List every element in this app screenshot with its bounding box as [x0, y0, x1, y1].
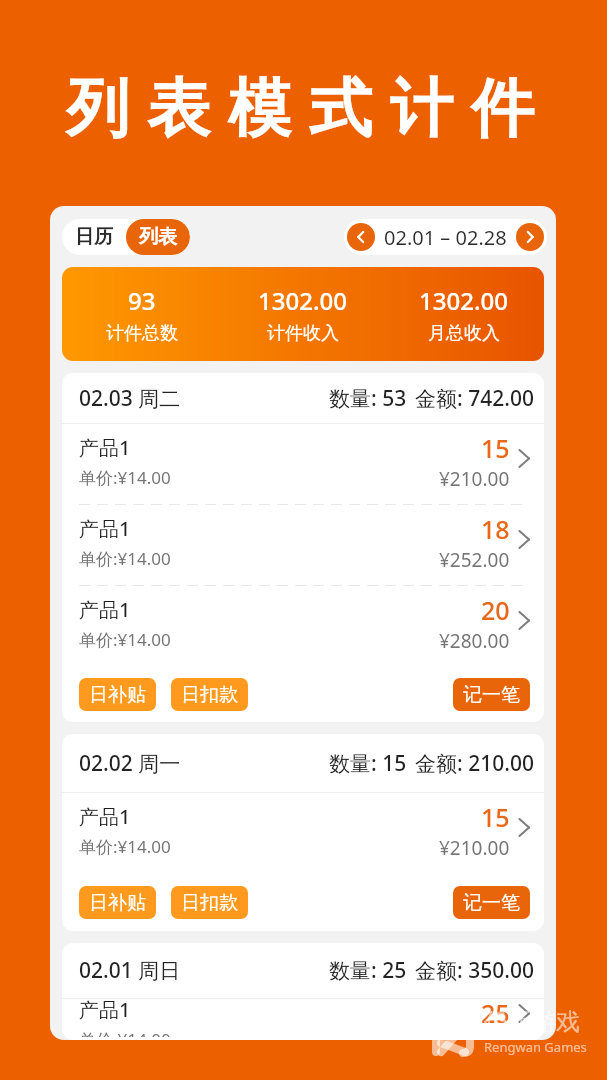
staticText: ¥280.00 — [439, 628, 510, 654]
staticText: ¥210.00 — [439, 835, 510, 861]
staticText: 单价:¥14.00 — [79, 1028, 171, 1037]
staticText: 数量: 15 — [329, 749, 407, 778]
staticText: 单价:¥14.00 — [79, 547, 171, 570]
staticText: Rengwan Games — [484, 1038, 587, 1056]
button[interactable]: 日补贴 — [79, 678, 156, 711]
staticText: 金额: 210.00 — [415, 749, 534, 778]
staticText: 数量: 25 — [329, 956, 407, 985]
staticText: 25 — [481, 996, 510, 1030]
staticText: 记一笔 — [463, 683, 520, 707]
button[interactable]: 产品1 — [62, 793, 544, 873]
staticText: 02.01 周日 — [79, 956, 181, 985]
staticText: 产品1 — [79, 996, 131, 1023]
staticText: 仍玩游戏 — [484, 1007, 580, 1037]
staticText: 产品1 — [79, 803, 131, 830]
staticText: 计件收入 — [267, 322, 339, 345]
staticText: 18 — [481, 512, 510, 546]
button[interactable]: Previous period — [347, 223, 375, 251]
button[interactable]: 日扣款 — [171, 678, 248, 711]
staticText: 02.02 周一 — [79, 749, 181, 778]
button[interactable]: 产品1 — [62, 424, 544, 504]
button[interactable]: 产品1 — [62, 586, 544, 666]
button[interactable]: 日补贴 — [79, 886, 156, 919]
button[interactable]: 日历 — [62, 219, 126, 255]
staticText: 列表 — [139, 225, 177, 249]
staticText: 产品1 — [79, 434, 131, 461]
staticText: 15 — [481, 800, 510, 834]
staticText: 20 — [481, 593, 510, 627]
staticText: 15 — [481, 431, 510, 465]
button[interactable]: 记一笔 — [453, 678, 530, 711]
staticText: 数量: 53 — [329, 384, 407, 413]
staticText: 02.01 – 02.28 — [384, 224, 507, 251]
staticText: 日扣款 — [181, 891, 238, 915]
staticText: 日历 — [75, 225, 113, 249]
staticText: 日扣款 — [181, 683, 238, 707]
staticText: 单价:¥14.00 — [79, 835, 171, 858]
staticText: 1302.00 — [419, 284, 508, 317]
staticText: 1302.00 — [258, 284, 347, 317]
staticText: 产品1 — [79, 515, 131, 542]
staticText: 金额: 350.00 — [415, 956, 534, 985]
button[interactable]: 日扣款 — [171, 886, 248, 919]
staticText: 日补贴 — [89, 683, 146, 707]
staticText: 93 — [128, 284, 156, 317]
staticText: 单价:¥14.00 — [79, 466, 171, 489]
staticText: 月总收入 — [428, 322, 500, 345]
staticText: 02.03 周二 — [79, 384, 181, 413]
button[interactable]: 记一笔 — [453, 886, 530, 919]
staticText: 日补贴 — [89, 891, 146, 915]
staticText: 单价:¥14.00 — [79, 628, 171, 651]
button[interactable]: 列表 — [126, 219, 190, 255]
button[interactable]: Next period — [516, 223, 544, 251]
button[interactable]: 产品1 — [62, 505, 544, 585]
staticText: 产品1 — [79, 596, 131, 623]
staticText: ¥252.00 — [439, 547, 510, 573]
staticText: 计件总数 — [106, 322, 178, 345]
staticText: 金额: 742.00 — [415, 384, 534, 413]
staticText: 列表模式计件 — [57, 69, 543, 148]
staticText: ¥210.00 — [439, 466, 510, 492]
button[interactable]: 产品1 — [62, 999, 544, 1040]
staticText: 记一笔 — [463, 891, 520, 915]
